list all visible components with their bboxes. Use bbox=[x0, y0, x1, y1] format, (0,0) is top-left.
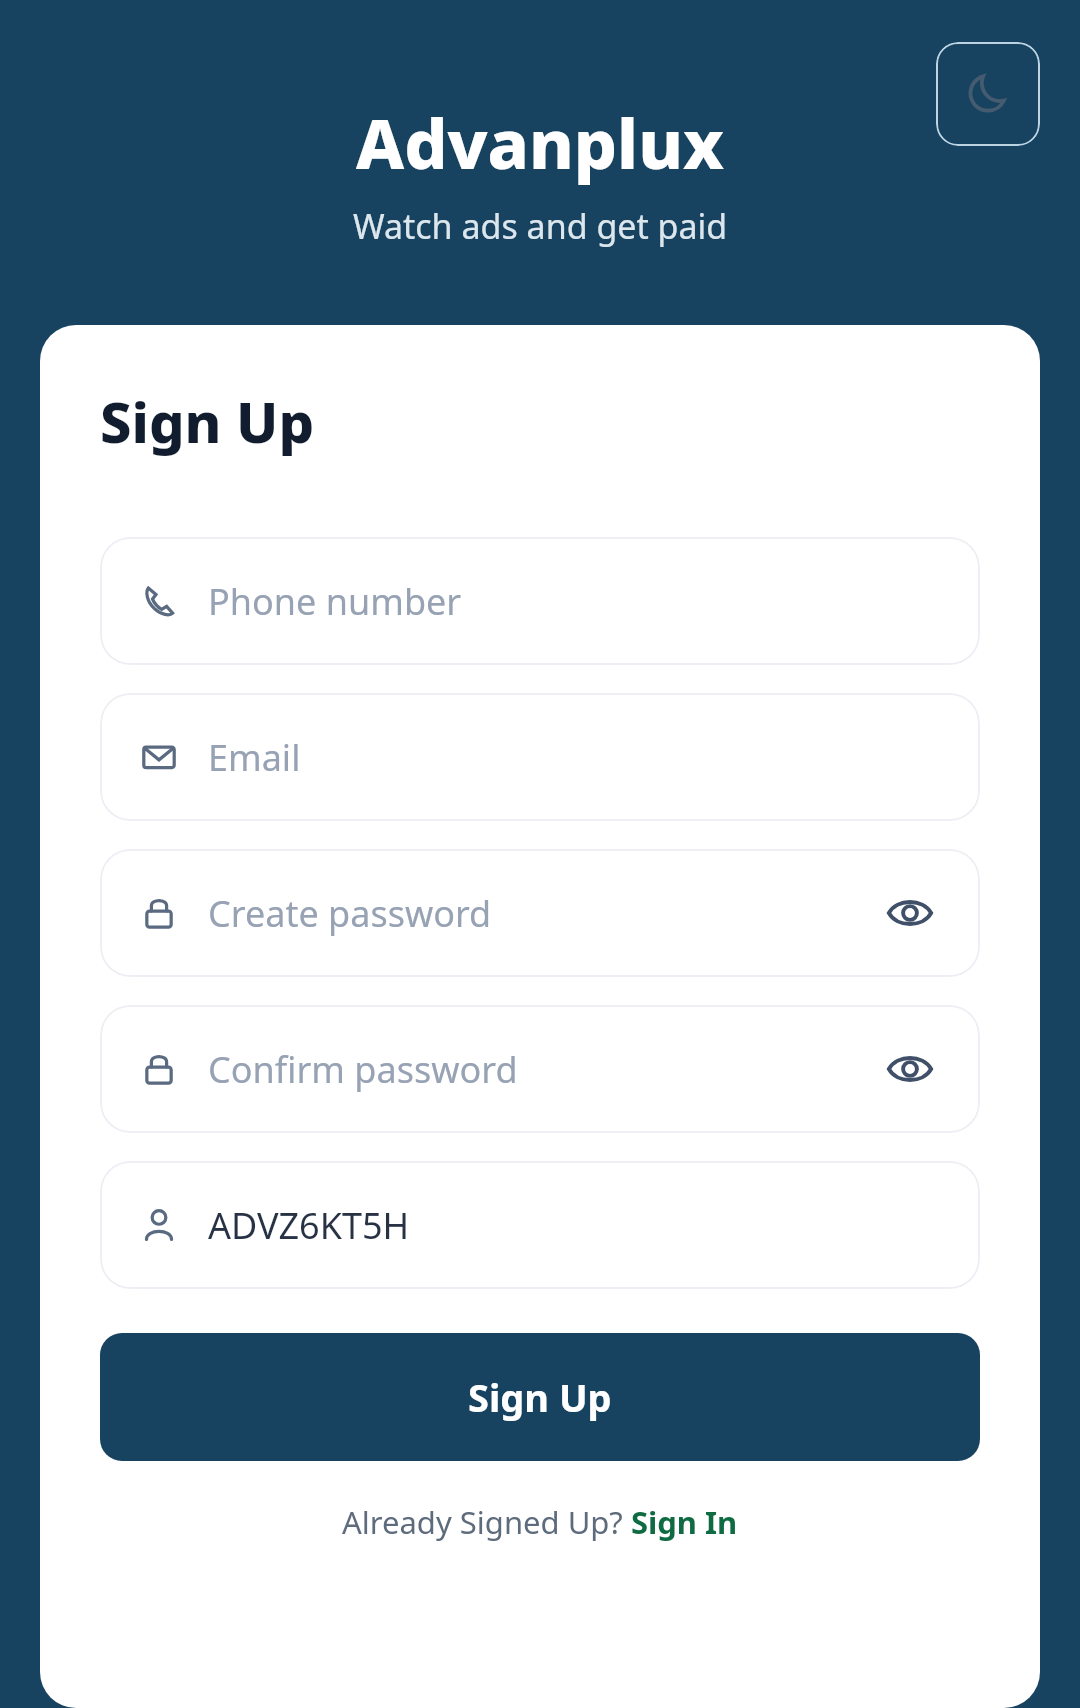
button[interactable]: Toggle dark mode bbox=[936, 42, 1040, 146]
staticText: Already Signed Up? Sign In bbox=[342, 1501, 738, 1543]
staticText: Sign Up bbox=[468, 1371, 612, 1423]
button[interactable]: ADVZ6KT5H bbox=[100, 1161, 980, 1289]
staticText: Confirm password bbox=[208, 1045, 518, 1094]
button[interactable]: Email bbox=[100, 693, 980, 821]
staticText: ADVZ6KT5H bbox=[208, 1201, 410, 1250]
staticText: Create password bbox=[208, 889, 492, 938]
button[interactable]: Create password bbox=[100, 849, 980, 977]
staticText: Watch ads and get paid bbox=[353, 203, 728, 249]
staticText: Phone number bbox=[208, 577, 462, 626]
staticText: Advanplux bbox=[356, 96, 724, 189]
button[interactable]: Already Signed Up? Sign In bbox=[342, 1501, 738, 1543]
button[interactable]: Sign Up bbox=[100, 1333, 980, 1461]
button[interactable]: Show password bbox=[880, 883, 940, 943]
staticText: Sign Up bbox=[100, 383, 315, 459]
button[interactable]: Show password bbox=[880, 1039, 940, 1099]
staticText: Email bbox=[208, 733, 301, 782]
button[interactable]: Phone number bbox=[100, 537, 980, 665]
button[interactable]: Confirm password bbox=[100, 1005, 980, 1133]
